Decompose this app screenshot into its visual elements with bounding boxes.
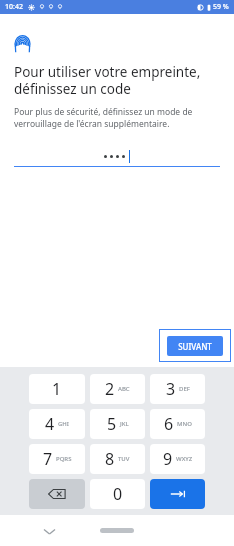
staticText: WXYZ xyxy=(176,455,193,463)
button[interactable]: 2 xyxy=(90,374,145,404)
staticText: 5 xyxy=(107,413,117,435)
button[interactable]: Hide keyboard xyxy=(38,520,60,542)
staticText: SUIVANT xyxy=(178,341,212,352)
staticText: PQRS xyxy=(56,455,72,463)
staticText: TUV xyxy=(118,455,130,463)
button[interactable]: Backspace xyxy=(29,479,85,509)
staticText: 9 xyxy=(163,448,173,470)
staticText: ABC xyxy=(118,385,130,393)
button[interactable]: Home xyxy=(100,528,134,533)
staticText: 7 xyxy=(43,448,53,470)
staticText: GHI xyxy=(58,420,69,428)
button[interactable]: 6 xyxy=(150,409,205,439)
staticText: 8 xyxy=(105,448,115,470)
button[interactable]: SUIVANT xyxy=(159,329,231,362)
button[interactable]: Enter xyxy=(150,479,205,509)
button[interactable]: 4 xyxy=(29,409,85,439)
button[interactable]: 1 xyxy=(29,374,85,404)
button[interactable]: 5 xyxy=(90,409,145,439)
button[interactable]: 3 xyxy=(150,374,205,404)
button[interactable]: 7 xyxy=(29,444,85,474)
staticText: Pour plus de sécurité, définissez un mod… xyxy=(14,106,193,130)
button[interactable]: 8 xyxy=(90,444,145,474)
staticText: 3 xyxy=(166,378,176,400)
staticText: 2 xyxy=(105,378,115,400)
staticText: 1 xyxy=(52,378,62,400)
staticText: DEF xyxy=(179,385,190,393)
staticText: JKL xyxy=(120,420,129,428)
other: Fingerprint xyxy=(14,34,31,53)
staticText: 4 xyxy=(45,413,55,435)
staticText: MNO xyxy=(177,420,192,428)
staticText: 6 xyxy=(164,413,174,435)
button[interactable]: 0 xyxy=(90,479,145,509)
staticText: 59 % xyxy=(213,2,229,12)
staticText: 10:42 xyxy=(5,2,23,12)
button[interactable]: 9 xyxy=(150,444,205,474)
staticText: Pour utiliser votre empreinte, définisse… xyxy=(14,63,201,98)
staticText: 0 xyxy=(113,483,123,505)
